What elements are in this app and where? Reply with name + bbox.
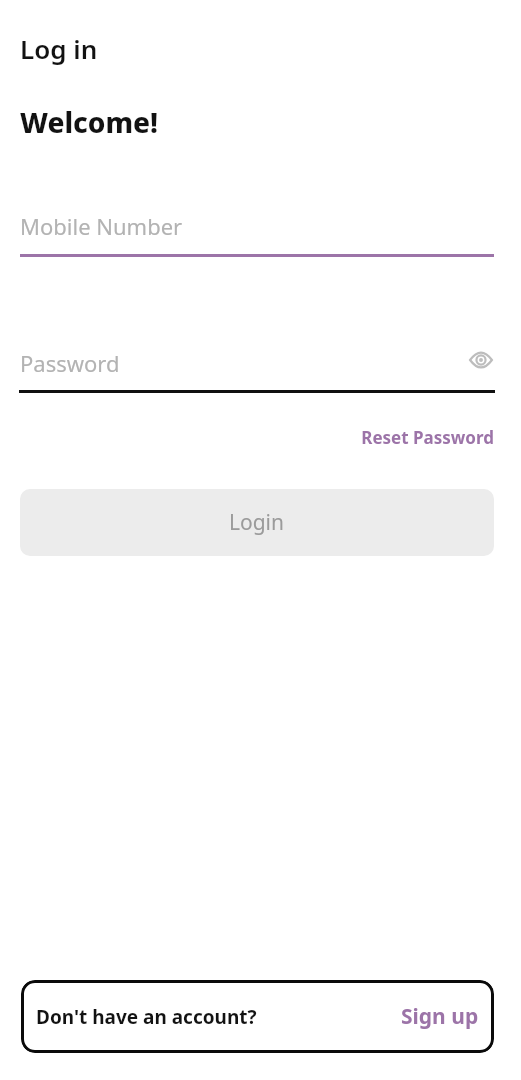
button[interactable]: Reset Password: [330, 424, 494, 450]
staticText: Welcome!: [20, 103, 159, 141]
staticText: Login: [229, 508, 285, 537]
staticText: Password: [20, 348, 120, 378]
staticText: Mobile Number: [20, 211, 183, 241]
button[interactable]: Show password: [461, 340, 501, 380]
staticText: Reset Password: [361, 426, 494, 449]
button[interactable]: Password: [19, 341, 495, 393]
button[interactable]: Login: [20, 489, 494, 556]
staticText: Don't have an account?: [36, 1004, 257, 1030]
staticText: Log in: [20, 31, 98, 66]
button[interactable]: Mobile Number: [20, 204, 494, 257]
button[interactable]: Don't have an account?: [36, 980, 479, 1053]
staticText: Sign up: [401, 1002, 479, 1031]
